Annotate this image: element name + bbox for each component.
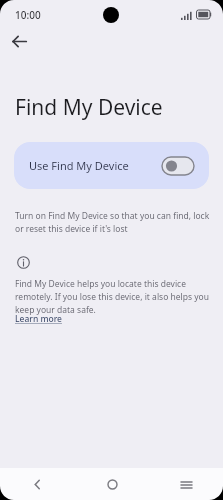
staticText: 10:00 [15, 8, 41, 22]
button[interactable]: Back [4, 26, 34, 56]
button[interactable]: Back [0, 468, 75, 500]
button[interactable]: Use Find My Device [14, 142, 209, 189]
staticText: Turn on Find My Device so that you can f… [15, 210, 211, 235]
staticText: Find My Device [15, 93, 163, 122]
button[interactable]: Learn more [15, 313, 62, 325]
staticText: Use Find My Device [29, 158, 162, 173]
staticText: Find My Device helps you locate this dev… [15, 278, 211, 316]
button[interactable]: Home [75, 468, 149, 500]
button[interactable]: Recent apps [149, 468, 223, 500]
staticText: Learn more [15, 313, 62, 325]
